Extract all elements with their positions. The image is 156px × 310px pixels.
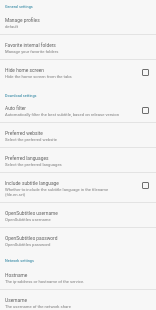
other: Toggle Hide home screen <box>142 69 149 76</box>
button[interactable]: Auto filter <box>0 98 156 122</box>
staticText: default <box>5 24 19 29</box>
staticText: Username <box>5 298 27 304</box>
staticText: Select the preferred website <box>5 137 57 142</box>
staticText: Hide the home screen from the tabs <box>5 74 72 79</box>
button[interactable]: OpenSubtitles password <box>0 228 156 252</box>
staticText: Preferred website <box>5 131 43 137</box>
staticText: Automatically filter the best subtitle, … <box>5 112 119 117</box>
staticText: The ip-address or hostname of the servic… <box>5 279 85 284</box>
staticText: Download settings <box>5 93 37 97</box>
button[interactable]: Include subtitle language <box>0 173 156 202</box>
button[interactable]: Preferred languages <box>0 148 156 172</box>
staticText: Include subtitle language <box>5 181 59 187</box>
staticText: Hide home screen <box>5 68 45 74</box>
staticText: Hostname <box>5 273 28 279</box>
button[interactable]: Hostname <box>0 265 156 289</box>
button[interactable]: Preferred website <box>0 123 156 147</box>
button[interactable]: Manage profiles <box>0 10 156 34</box>
staticText: Manage your favorite folders <box>5 49 59 54</box>
button[interactable]: OpenSubtitles username <box>0 203 156 227</box>
staticText: Favorite internal folders <box>5 43 56 49</box>
staticText: OpenSubtitles password <box>5 242 51 247</box>
staticText: Whether to include the subtitle language… <box>5 187 109 197</box>
staticText: Network settings <box>5 258 34 262</box>
staticText: The username of the network share <box>5 304 71 309</box>
staticText: Preferred languages <box>5 156 49 162</box>
other: Toggle Include subtitle language <box>142 182 149 189</box>
staticText: OpenSubtitles username <box>5 217 51 222</box>
staticText: Manage profiles <box>5 18 40 24</box>
button[interactable]: Favorite internal folders <box>0 35 156 59</box>
button[interactable]: Hide home screen <box>0 60 156 84</box>
staticText: OpenSubtitles password <box>5 236 58 242</box>
staticText: OpenSubtitles username <box>5 211 58 217</box>
staticText: Select the preferred languages <box>5 162 62 167</box>
staticText: Auto filter <box>5 106 26 112</box>
button[interactable]: Username <box>0 290 156 310</box>
other: Toggle Auto filter <box>142 107 149 114</box>
staticText: General settings <box>5 4 33 8</box>
